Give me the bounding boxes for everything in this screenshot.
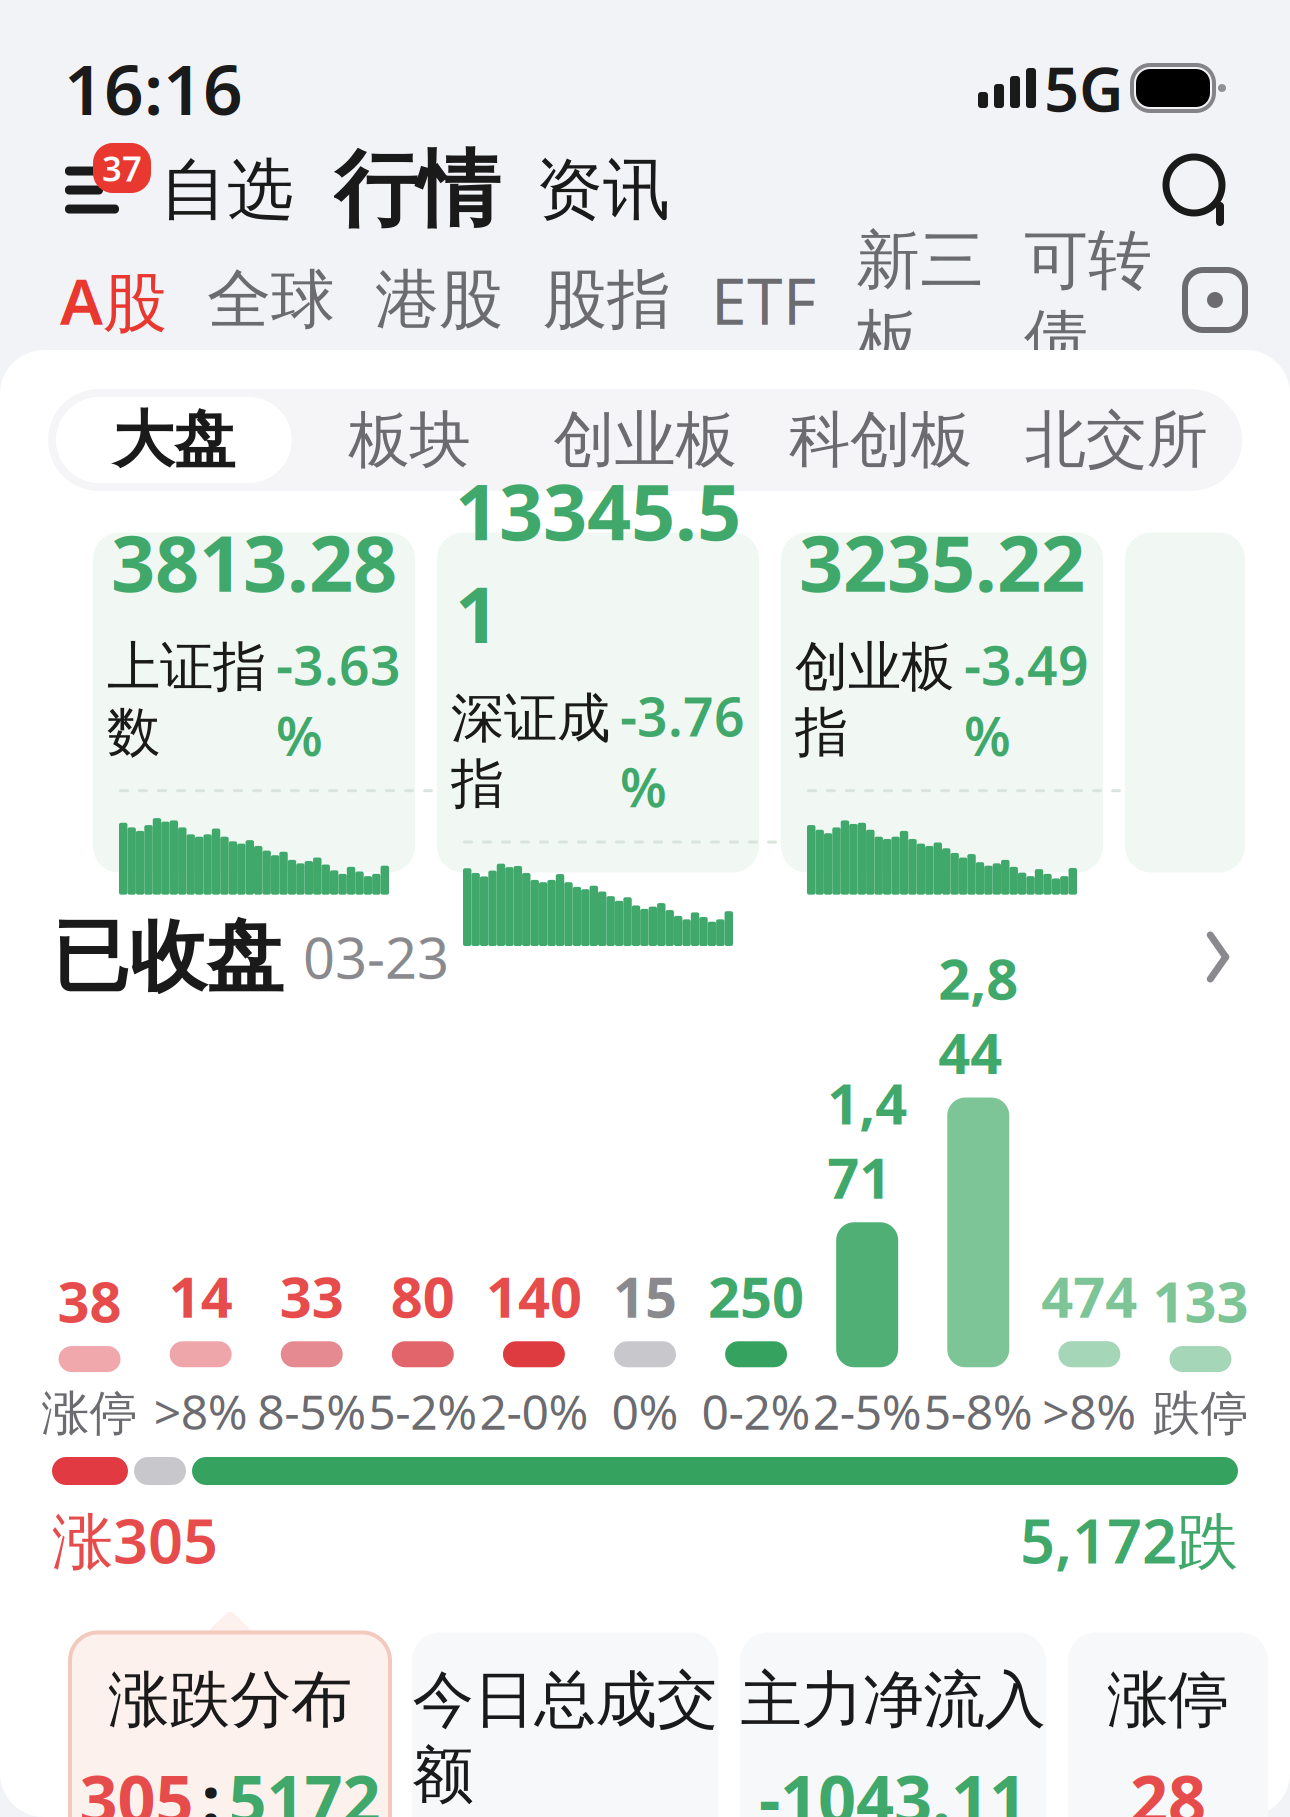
staticText: 16:16 — [64, 42, 243, 134]
staticText: 5172 — [228, 1754, 380, 1817]
staticText: 140 — [486, 1259, 582, 1333]
button[interactable]: 创业板 — [527, 397, 763, 483]
staticText: 3813.28 — [111, 510, 397, 613]
button[interactable]: 13345.51 — [437, 532, 759, 872]
button[interactable]: 菜单 — [46, 154, 138, 226]
staticText: 33 — [280, 1259, 344, 1333]
staticText: 北交所 — [1025, 402, 1208, 478]
staticText: 5G — [1044, 47, 1124, 129]
staticText: 5-2% — [368, 1379, 477, 1443]
staticText: 深证成指 — [451, 686, 610, 817]
staticText: 1,471 — [827, 1065, 907, 1214]
staticText: -3.76% — [620, 680, 745, 822]
button[interactable]: A股 — [40, 252, 187, 348]
staticText: 2-0% — [479, 1379, 588, 1443]
staticText: 305 — [79, 1754, 193, 1817]
staticText: 03-23 — [303, 920, 449, 994]
button[interactable]: 涨停 — [1068, 1610, 1268, 1817]
button[interactable]: 更多分类 — [1180, 265, 1250, 335]
button[interactable]: 科创板 — [763, 397, 998, 483]
button[interactable]: 已收盘 — [0, 909, 1290, 1005]
button[interactable]: 3235.22 — [781, 532, 1103, 872]
staticText: 今日总成交额 — [412, 1662, 717, 1813]
staticText: 5-8% — [924, 1379, 1033, 1443]
button[interactable]: 自选 — [138, 145, 316, 235]
staticText: 创业板指 — [795, 634, 954, 765]
staticText: >8% — [1042, 1379, 1136, 1443]
staticText: 可转债 — [1024, 221, 1152, 379]
staticText: 15 — [613, 1259, 677, 1333]
staticText: 股指 — [543, 261, 671, 339]
staticText: 全球 — [207, 261, 335, 339]
staticText: 行情 — [334, 139, 500, 241]
button[interactable]: 资讯 — [518, 145, 688, 235]
staticText: 133 — [1152, 1264, 1248, 1338]
button[interactable]: 涨跌分布 — [70, 1610, 390, 1817]
button[interactable]: 3813.28 — [93, 532, 415, 872]
button[interactable]: 可转债 — [1004, 252, 1172, 348]
button[interactable]: 港股 — [355, 252, 523, 348]
button[interactable]: 搜索 — [1152, 144, 1244, 236]
staticText: 自选 — [160, 149, 294, 231]
staticText: 2-5% — [813, 1379, 922, 1443]
staticText: 80 — [391, 1259, 455, 1333]
staticText: 大盘 — [113, 402, 235, 478]
staticText: 250 — [708, 1259, 804, 1333]
staticText: 涨停 — [41, 1384, 137, 1443]
staticText: 涨跌分布 — [108, 1662, 352, 1738]
staticText: ETF — [711, 257, 816, 342]
button[interactable]: ETF — [691, 252, 836, 348]
button[interactable]: 主力净流入 — [740, 1610, 1046, 1817]
button[interactable]: 全球 — [187, 252, 355, 348]
staticText: 2,844 — [938, 941, 1018, 1089]
staticText: 主力净流入 — [740, 1662, 1045, 1738]
staticText: 13345.51 — [455, 459, 741, 664]
button[interactable]: 今日总成交额 — [412, 1610, 718, 1817]
staticText: 涨停 — [1107, 1662, 1229, 1738]
staticText: 28 — [1130, 1754, 1206, 1817]
button[interactable]: 新三板 — [836, 252, 1004, 348]
staticText: 0-2% — [702, 1379, 811, 1443]
staticText: 创业板 — [553, 402, 736, 478]
staticText: 5,172跌 — [1020, 1499, 1238, 1580]
staticText: -3.49% — [964, 629, 1089, 771]
button[interactable]: 行情 — [316, 145, 518, 235]
staticText: >8% — [154, 1379, 248, 1443]
staticText: 474 — [1041, 1259, 1137, 1333]
staticText: 板块 — [348, 402, 470, 478]
staticText: 38 — [57, 1264, 121, 1338]
button[interactable]: 板块 — [292, 397, 527, 483]
staticText: 涨305 — [52, 1499, 218, 1580]
staticText: 3235.22 — [799, 510, 1085, 613]
staticText: 已收盘 — [52, 909, 283, 1004]
staticText: 14 — [169, 1259, 233, 1333]
button[interactable]: 北交所 — [998, 397, 1234, 483]
button[interactable]: 股指 — [523, 252, 691, 348]
staticText: 上证指数 — [107, 634, 266, 765]
staticText: 37 — [102, 145, 142, 191]
staticText: 新三板 — [856, 221, 984, 379]
staticText: 0% — [611, 1379, 678, 1443]
staticText: 科创板 — [789, 402, 972, 478]
staticText: -3.63% — [276, 629, 401, 771]
staticText: 跌停 — [1152, 1384, 1248, 1443]
staticText: 8-5% — [257, 1379, 366, 1443]
button[interactable]: 大盘 — [56, 397, 292, 483]
staticText: A股 — [60, 257, 167, 343]
staticText: -1043.11亿 — [759, 1754, 1027, 1817]
staticText: : — [201, 1754, 220, 1817]
staticText: 港股 — [375, 261, 503, 339]
staticText: 资讯 — [536, 149, 670, 231]
